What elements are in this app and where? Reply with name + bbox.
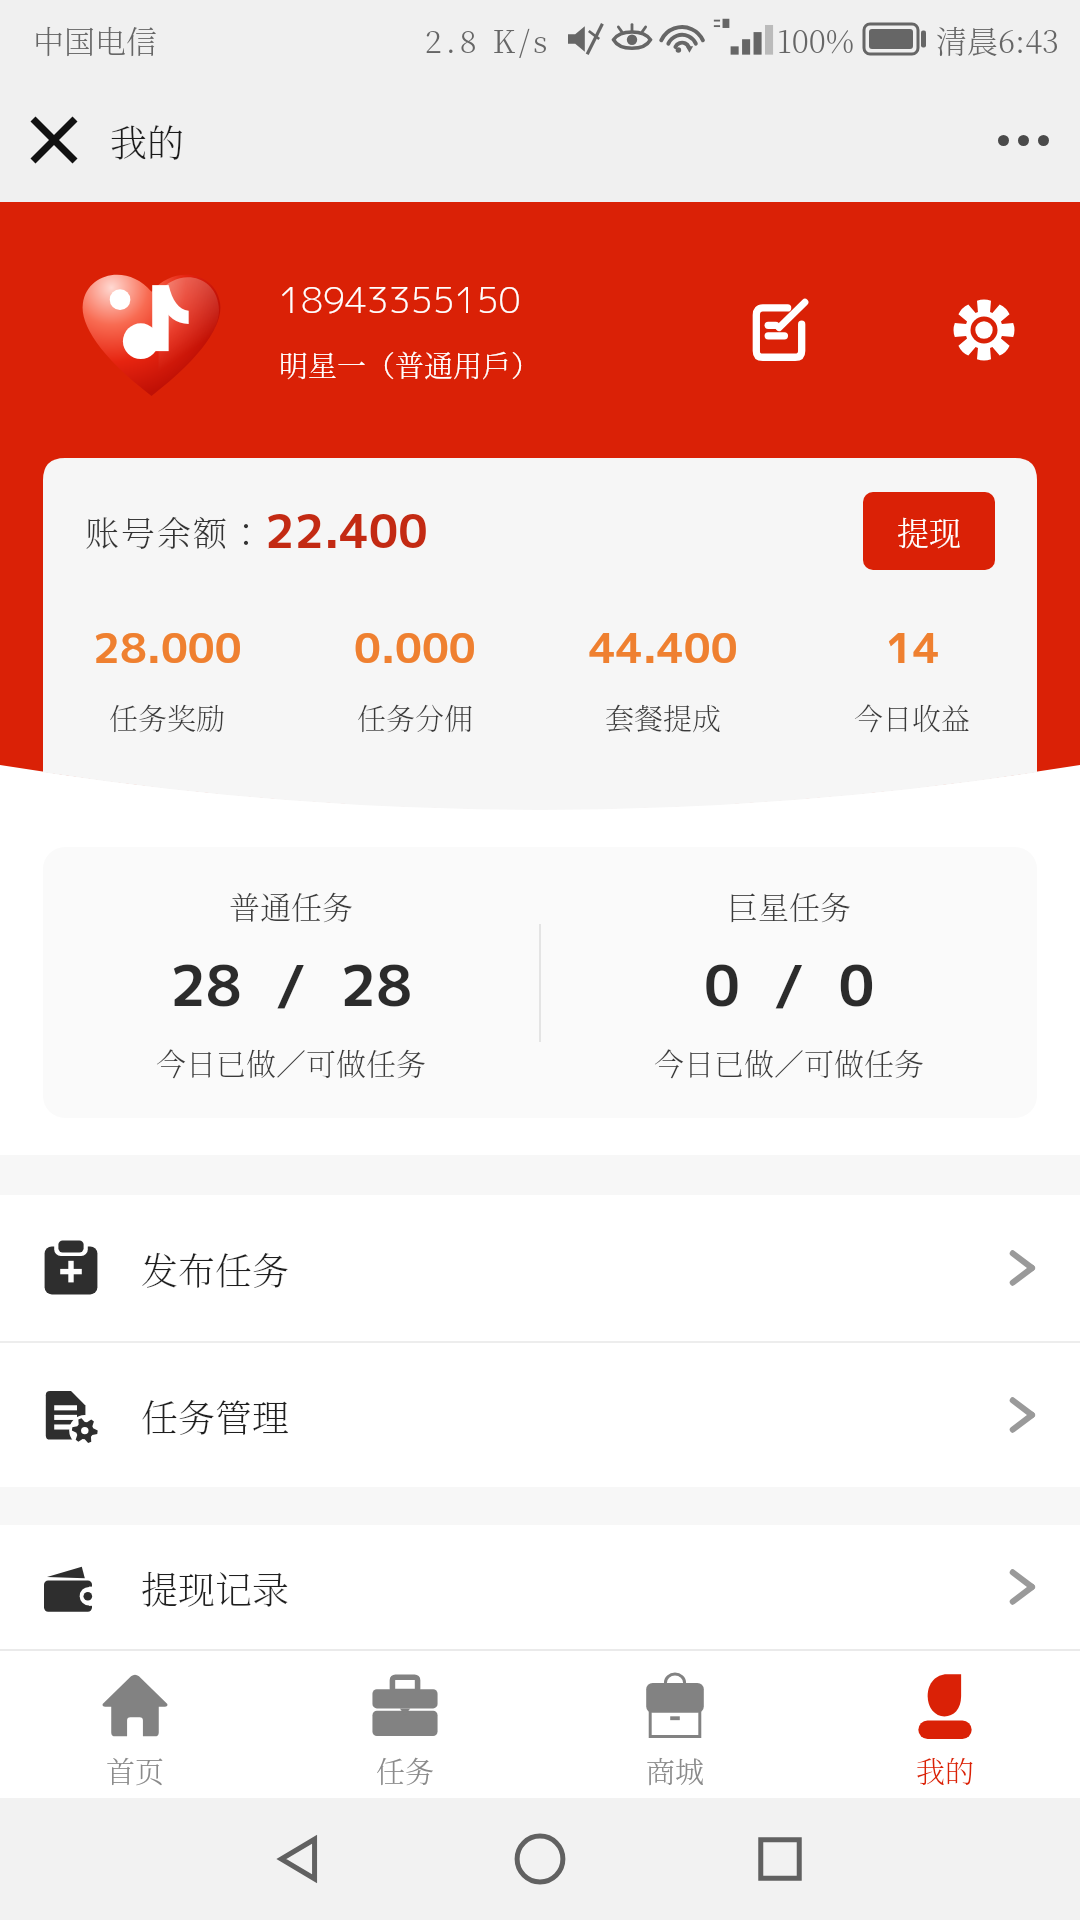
button[interactable]: 发布任务 (0, 1195, 1080, 1341)
staticText: 任务 (376, 1750, 435, 1792)
button[interactable]: 提现 (863, 492, 995, 570)
button[interactable]: Recents (735, 1814, 825, 1904)
staticText: 18943355150 (279, 274, 521, 324)
staticText: 中国电信 (33, 17, 157, 62)
staticText: 任务奖励 (109, 697, 226, 739)
button[interactable]: Back (255, 1814, 345, 1904)
staticText: 商城 (646, 1750, 705, 1792)
button[interactable]: Edit profile (731, 282, 827, 378)
staticText: 0 / 0 (704, 946, 875, 1024)
button[interactable]: 任务 (270, 1651, 540, 1798)
button[interactable]: Home (495, 1814, 585, 1904)
button[interactable]: 商城 (540, 1651, 810, 1798)
staticText: 发布任务 (141, 1242, 289, 1295)
staticText: 今日已做／可做任务 (156, 1040, 426, 1083)
staticText: 100% (777, 17, 855, 62)
staticText: 我的 (110, 114, 184, 167)
staticText: 提现记录 (141, 1561, 289, 1614)
staticText: 今日已做／可做任务 (654, 1040, 924, 1083)
staticText: 套餐提成 (605, 697, 722, 739)
button[interactable]: 我的 (810, 1651, 1080, 1798)
button[interactable]: 任务管理 (0, 1343, 1080, 1487)
staticText: 清晨6:43 (936, 17, 1060, 62)
staticText: 今日收益 (854, 697, 971, 739)
staticText: 44.400 (589, 618, 738, 677)
button[interactable]: 提现记录 (0, 1525, 1080, 1649)
staticText: 我的 (916, 1750, 975, 1792)
staticText: 28.000 (93, 618, 242, 677)
staticText: 巨星任务 (727, 883, 851, 928)
staticText: 提现 (897, 508, 962, 554)
button[interactable]: Settings (936, 282, 1032, 378)
button[interactable]: 首页 (0, 1651, 270, 1798)
staticText: 2.8 K/s (425, 17, 552, 62)
staticText: 任务分佣 (357, 697, 474, 739)
staticText: 28 / 28 (170, 946, 413, 1024)
staticText: 任务管理 (141, 1389, 289, 1442)
staticText: 首页 (106, 1750, 165, 1792)
staticText: 账号余额： (85, 507, 265, 556)
staticText: 0.000 (354, 618, 476, 677)
staticText: 22.400 (265, 499, 428, 563)
staticText: 14 (886, 618, 940, 677)
staticText: 明星一（普通用戶） (279, 344, 541, 386)
button[interactable]: Close (10, 96, 98, 184)
button[interactable]: More options (988, 105, 1058, 175)
staticText: 普通任务 (229, 883, 353, 928)
